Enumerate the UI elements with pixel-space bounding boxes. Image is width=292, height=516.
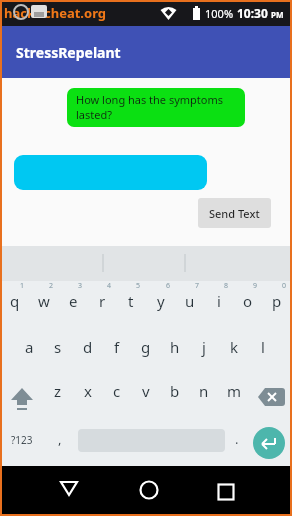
button[interactable]: g xyxy=(132,330,160,364)
staticText: z xyxy=(54,381,62,401)
staticText: y xyxy=(157,291,165,311)
staticText: hack xyxy=(4,4,36,22)
button[interactable]: Send Text xyxy=(198,198,271,228)
staticText: , xyxy=(58,430,62,448)
staticText: . xyxy=(235,430,239,448)
staticText: e xyxy=(69,291,78,311)
staticText: v xyxy=(142,381,150,401)
button[interactable]: x xyxy=(74,374,102,408)
button[interactable]: c xyxy=(103,374,131,408)
button[interactable]: s xyxy=(44,330,72,364)
button[interactable] xyxy=(212,478,240,506)
button[interactable]: How long has the symptoms lasted? xyxy=(67,88,245,127)
staticText: a xyxy=(25,337,34,357)
staticText: 9 xyxy=(253,281,258,291)
button[interactable]: l xyxy=(249,330,277,364)
button[interactable]: f xyxy=(103,330,131,364)
staticText: q xyxy=(10,291,20,311)
button[interactable]: h xyxy=(161,330,189,364)
staticText: cheat.org xyxy=(44,4,107,22)
button[interactable]: m xyxy=(220,374,248,408)
button[interactable]: b xyxy=(161,374,189,408)
staticText: o xyxy=(243,291,253,311)
button[interactable]: . xyxy=(228,422,246,456)
button[interactable]: ?123 xyxy=(2,423,42,457)
staticText: 1 xyxy=(20,281,25,291)
staticText: How long has the symptoms lasted? xyxy=(76,92,224,122)
staticText: n xyxy=(199,381,209,401)
staticText: StressRepelant xyxy=(16,43,121,62)
button[interactable]: j xyxy=(190,330,218,364)
button[interactable]: o xyxy=(234,284,262,318)
staticText: 7 xyxy=(195,281,200,291)
button[interactable]: r xyxy=(88,284,116,318)
button[interactable]: v xyxy=(132,374,160,408)
staticText: s xyxy=(54,337,62,357)
button[interactable]: k xyxy=(220,330,248,364)
staticText: 0 xyxy=(282,281,287,291)
button[interactable]: n xyxy=(190,374,218,408)
button[interactable]: u xyxy=(176,284,204,318)
button[interactable]: , xyxy=(48,422,72,456)
staticText: j xyxy=(202,337,206,357)
staticText: 5 xyxy=(136,281,141,291)
staticText: 2 xyxy=(49,281,54,291)
button[interactable]: q xyxy=(1,284,29,318)
staticText: c xyxy=(113,381,121,401)
button[interactable] xyxy=(253,427,285,459)
staticText: 10:30 xyxy=(237,5,268,21)
staticText: m xyxy=(227,381,242,401)
button[interactable]: i xyxy=(205,284,233,318)
staticText: u xyxy=(185,291,195,311)
staticText: f xyxy=(114,337,120,357)
button[interactable]: a xyxy=(15,330,43,364)
staticText: 6 xyxy=(166,281,171,291)
staticText: d xyxy=(83,337,93,357)
staticText: 4 xyxy=(107,281,112,291)
staticText: g xyxy=(141,337,151,357)
staticText: k xyxy=(230,337,239,357)
button[interactable] xyxy=(254,374,288,408)
staticText: PM xyxy=(271,9,284,20)
button[interactable]: e xyxy=(59,284,87,318)
staticText: 100% xyxy=(205,6,234,21)
staticText: 3 xyxy=(78,281,83,291)
staticText: l xyxy=(261,337,265,357)
button[interactable]: d xyxy=(74,330,102,364)
button[interactable] xyxy=(6,374,38,408)
button[interactable]: z xyxy=(44,374,72,408)
staticText: p xyxy=(272,291,282,311)
staticText: w xyxy=(38,291,50,311)
button[interactable] xyxy=(55,474,83,502)
staticText: b xyxy=(170,381,180,401)
button[interactable] xyxy=(14,155,207,190)
button[interactable] xyxy=(135,476,163,504)
button[interactable]: p xyxy=(263,284,291,318)
staticText: x xyxy=(84,381,92,401)
staticText: ?123 xyxy=(11,433,33,447)
staticText: Send Text xyxy=(209,206,260,221)
button[interactable]: t xyxy=(117,284,145,318)
staticText: t xyxy=(128,291,134,311)
staticText: 8 xyxy=(224,281,229,291)
button[interactable]: y xyxy=(147,284,175,318)
staticText: r xyxy=(99,291,106,311)
staticText: i xyxy=(217,291,221,311)
button[interactable]: w xyxy=(30,284,58,318)
staticText: h xyxy=(170,337,180,357)
